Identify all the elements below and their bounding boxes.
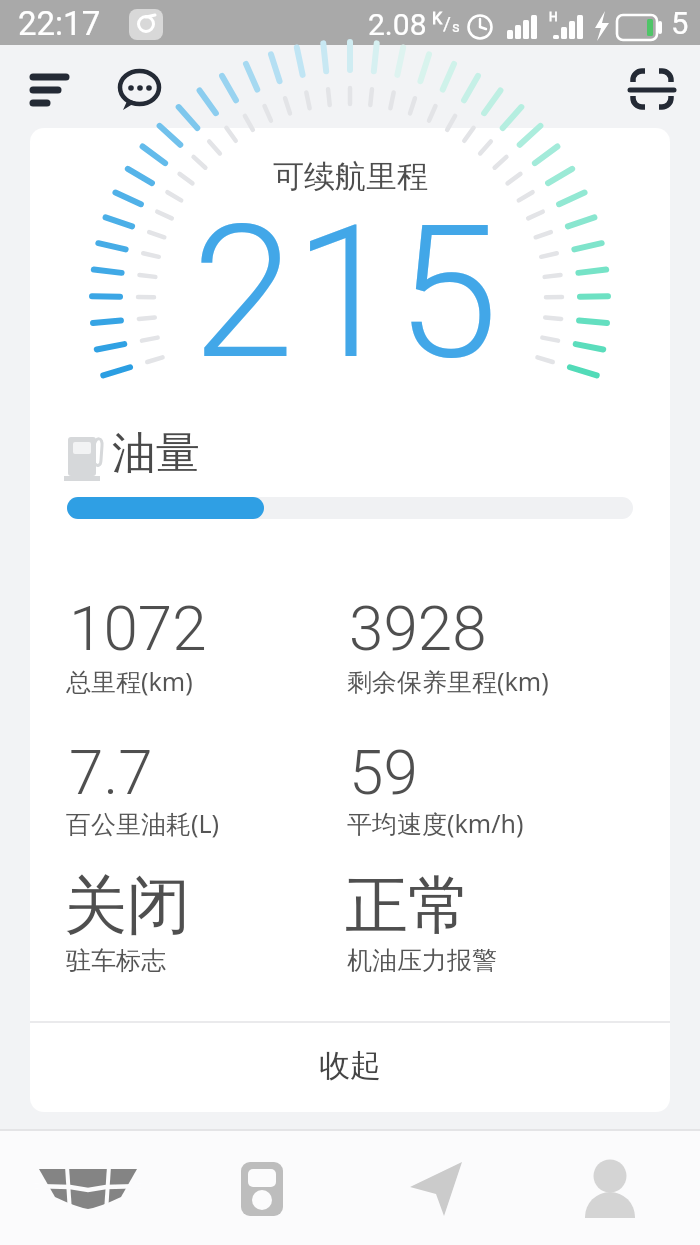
staticText: 可续航里程 (273, 157, 428, 196)
staticText: 22:17 (18, 4, 101, 43)
staticText: 正常 (345, 866, 471, 945)
staticText: / (443, 12, 451, 34)
staticText: 关闭 (64, 866, 190, 945)
staticText: 215 (192, 185, 499, 401)
staticText: 百公里油耗(L) (66, 806, 220, 840)
staticText: s (452, 18, 460, 36)
staticText: 总里程(km) (66, 664, 193, 698)
staticText: 驻车标志 (66, 945, 166, 976)
staticText: H (549, 10, 558, 24)
staticText: 油量 (112, 426, 200, 481)
staticText: 剩余保养里程(km) (347, 664, 549, 698)
staticText: 1072 (69, 592, 207, 665)
staticText: 平均速度(km/h) (347, 806, 524, 840)
staticText: K (432, 9, 443, 28)
staticText: 5 (671, 5, 689, 41)
staticText: 7.7 (69, 736, 153, 809)
staticText: 收起 (319, 1046, 381, 1085)
staticText: 机油压力报警 (347, 945, 497, 976)
staticText: 2.08 (368, 7, 427, 42)
staticText: 3928 (349, 592, 487, 665)
staticText: 59 (349, 736, 418, 809)
